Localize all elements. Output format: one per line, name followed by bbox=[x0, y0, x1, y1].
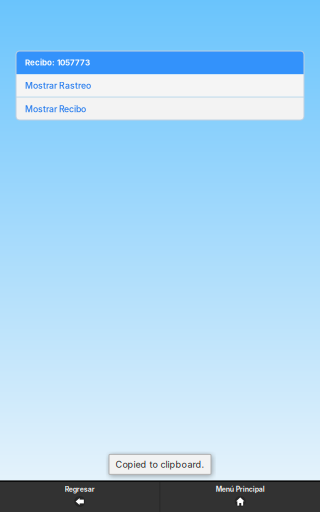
button[interactable]: Regresar bbox=[0, 482, 159, 512]
button[interactable]: Mostrar Rastreo bbox=[16, 74, 304, 97]
staticText: Mostrar Recibo bbox=[25, 104, 86, 114]
staticText: Copied to clipboard. bbox=[115, 459, 204, 470]
button[interactable]: Menú Principal bbox=[160, 482, 320, 512]
staticText: Regresar bbox=[65, 485, 95, 493]
staticText: Mostrar Rastreo bbox=[25, 80, 91, 91]
staticText: Menú Principal bbox=[216, 485, 265, 493]
button[interactable]: Mostrar Recibo bbox=[16, 98, 304, 120]
staticText: Recibo: 1057773 bbox=[25, 58, 90, 67]
